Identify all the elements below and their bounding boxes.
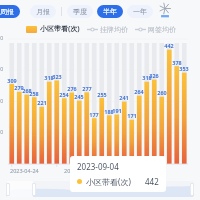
staticText: 309 <box>7 77 17 84</box>
button[interactable]: Range handle <box>6 181 194 197</box>
staticText: 260 <box>157 89 167 96</box>
staticText: 241 <box>119 94 129 101</box>
staticText: 318 <box>142 74 152 81</box>
staticText: 255 <box>97 91 107 98</box>
staticText: 323 <box>52 73 62 80</box>
button[interactable]: 周报 <box>0 5 20 18</box>
button[interactable]: 季度 <box>67 5 93 18</box>
button[interactable]: Share <box>156 3 174 20</box>
staticText: 177 <box>89 111 99 118</box>
button[interactable]: Range handle <box>190 183 194 196</box>
staticText: 277 <box>82 85 92 92</box>
staticText: 20 <box>64 167 71 174</box>
staticText: 221 <box>37 99 47 106</box>
staticText: 378 <box>172 59 182 66</box>
staticText: 442 <box>164 42 174 49</box>
staticText: 2023-09-04 <box>77 161 119 172</box>
staticText: 326 <box>149 72 159 79</box>
staticText: 周报 <box>0 7 14 16</box>
staticText: 小区带看(次) <box>40 24 80 34</box>
button[interactable]: 月报 <box>30 5 56 18</box>
staticText: 245 <box>74 93 84 100</box>
staticText: 月报 <box>36 7 50 16</box>
staticText: 318 <box>44 74 54 81</box>
staticText: 191 <box>112 107 122 114</box>
staticText: 442 <box>145 176 159 187</box>
staticText: 300 <box>0 66 3 73</box>
staticText: 小区带看(次) <box>86 176 131 187</box>
staticText: 半年 <box>103 7 117 16</box>
staticText: 279 <box>14 84 24 91</box>
staticText: 一年 <box>133 7 147 16</box>
button[interactable]: 一年 <box>127 5 153 18</box>
staticText: 网签均价 <box>148 25 176 34</box>
staticText: 268 <box>22 87 32 94</box>
staticText: 季度 <box>73 7 87 16</box>
staticText: 100 <box>0 129 3 136</box>
staticText: 400 <box>0 35 3 42</box>
button[interactable]: Range handle <box>6 183 10 196</box>
staticText: 挂牌均价 <box>100 25 128 34</box>
staticText: 2023-04-24 <box>10 167 39 174</box>
staticText: 276 <box>67 85 77 92</box>
staticText: 353 <box>179 65 189 72</box>
staticText: 264 <box>134 88 144 95</box>
staticText: 171 <box>127 112 137 119</box>
staticText: 188 <box>104 108 114 115</box>
staticText: 258 <box>29 90 39 97</box>
staticText: 200 <box>0 98 3 105</box>
button[interactable]: 2023-09-04 <box>70 156 166 192</box>
button[interactable]: Range handle <box>32 183 36 196</box>
button[interactable]: 半年 <box>97 5 123 18</box>
staticText: 254 <box>59 91 69 98</box>
